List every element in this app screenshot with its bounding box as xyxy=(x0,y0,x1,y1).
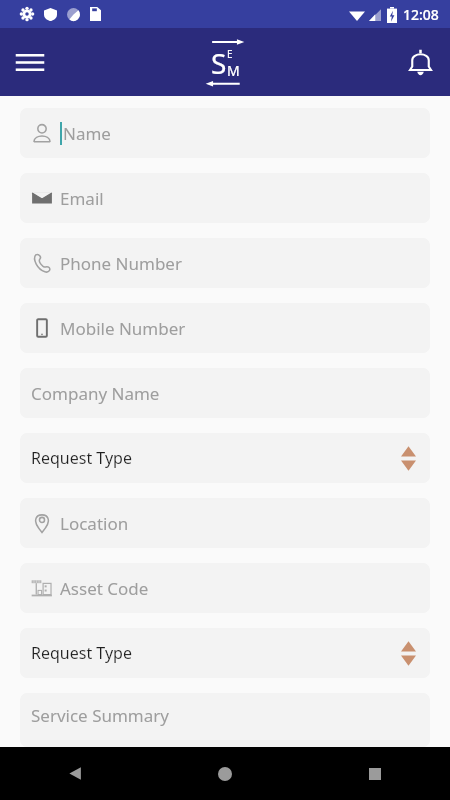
button[interactable]: Recent apps xyxy=(300,747,450,800)
staticText: Mobile Number xyxy=(60,317,186,340)
button[interactable]: Company Name xyxy=(20,368,430,418)
staticText: Request Type xyxy=(31,642,401,664)
staticText: Email xyxy=(60,187,104,210)
button[interactable]: Asset Code xyxy=(20,563,430,613)
staticText: S xyxy=(211,44,227,82)
button[interactable]: Name xyxy=(20,108,430,158)
staticText: E xyxy=(227,47,233,61)
button[interactable]: Open navigation menu xyxy=(6,38,54,86)
button[interactable]: Request Type xyxy=(20,628,430,678)
button[interactable]: Email xyxy=(20,173,430,223)
button[interactable]: Back xyxy=(0,747,150,800)
staticText: M xyxy=(227,61,240,80)
button[interactable]: Home xyxy=(150,747,300,800)
staticText: Phone Number xyxy=(60,252,182,275)
staticText: Asset Code xyxy=(60,577,149,600)
staticText: 12:08 xyxy=(403,5,439,24)
button[interactable]: Location xyxy=(20,498,430,548)
staticText: Name xyxy=(63,122,111,145)
staticText: Company Name xyxy=(31,382,160,405)
button[interactable]: Notifications xyxy=(396,38,444,86)
button[interactable]: Mobile Number xyxy=(20,303,430,353)
button[interactable]: Phone Number xyxy=(20,238,430,288)
button[interactable]: Service Summary xyxy=(20,693,430,747)
button[interactable]: Request Type xyxy=(20,433,430,483)
staticText: Location xyxy=(60,512,129,535)
staticText: Service Summary xyxy=(31,704,169,727)
staticText: Request Type xyxy=(31,447,401,469)
